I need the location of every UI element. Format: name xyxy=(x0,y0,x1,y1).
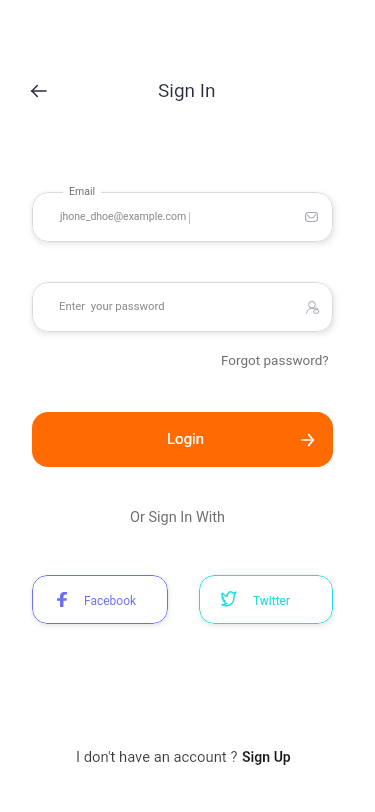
button[interactable]: Facebook xyxy=(32,575,168,624)
staticText: Login xyxy=(167,430,204,448)
staticText: jhone_dhoe@example.com xyxy=(60,210,187,222)
button[interactable]: Forgot password? xyxy=(215,348,335,372)
staticText: Sign In xyxy=(158,79,216,101)
staticText: Or Sign In With xyxy=(130,509,226,526)
staticText: Twitter xyxy=(253,594,291,608)
staticText: I don't have an account ? xyxy=(76,748,242,765)
staticText: Sign Up xyxy=(242,749,291,765)
staticText: Forgot password? xyxy=(221,352,329,368)
staticText: Facebook xyxy=(84,594,137,608)
other: Email xyxy=(305,212,318,222)
button[interactable]: Twitter xyxy=(199,575,333,624)
staticText: Enter your password xyxy=(59,300,165,313)
button[interactable]: jhone_dhoe@example.com xyxy=(32,192,333,242)
button[interactable]: I don't have an account ? xyxy=(76,748,291,765)
button[interactable]: Enter your password xyxy=(32,282,333,332)
staticText: Email xyxy=(69,185,95,197)
button[interactable]: Login xyxy=(32,412,333,467)
other: Show password xyxy=(306,301,319,314)
button[interactable]: Back xyxy=(22,74,55,107)
